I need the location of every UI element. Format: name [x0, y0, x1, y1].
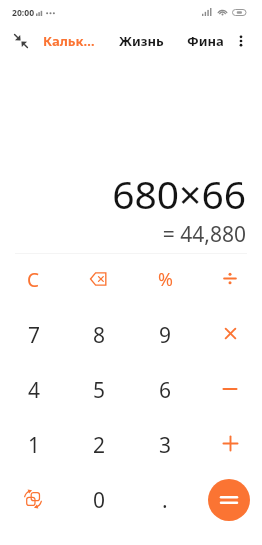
button[interactable]: Equals	[196, 471, 262, 526]
staticText: = 44,880	[162, 220, 246, 249]
button[interactable]: 6	[130, 361, 196, 416]
button[interactable]: 8	[65, 306, 130, 361]
button[interactable]: Финан	[187, 29, 224, 53]
button[interactable]: 1	[0, 416, 65, 471]
button[interactable]: 0	[65, 471, 130, 526]
button[interactable]: Converter	[0, 471, 65, 526]
staticText: 20:00	[12, 7, 35, 19]
staticText: 3	[159, 431, 172, 460]
staticText: 5	[93, 376, 106, 405]
staticText: Жизнь	[119, 32, 164, 50]
button[interactable]: Add	[196, 416, 262, 471]
staticText: Кальк…	[43, 32, 95, 50]
button[interactable]: Multiply	[196, 306, 262, 361]
staticText: Финан	[187, 32, 224, 50]
button[interactable]: 7	[0, 306, 65, 361]
staticText: 0	[93, 486, 106, 515]
staticText: %	[158, 267, 173, 292]
staticText: C	[27, 267, 40, 293]
button[interactable]: 4	[0, 361, 65, 416]
other: Multiply	[225, 328, 236, 339]
button[interactable]: Divide	[196, 251, 262, 306]
other: Collapse	[14, 34, 28, 48]
staticText: .	[162, 486, 168, 515]
button[interactable]: Backspace	[65, 251, 130, 306]
button[interactable]: 9	[130, 306, 196, 361]
staticText: 8	[93, 321, 106, 350]
button[interactable]: C	[0, 251, 65, 306]
staticText: 680×66	[112, 167, 246, 220]
staticText: 2	[93, 431, 106, 460]
button[interactable]: Subtract	[196, 361, 262, 416]
button[interactable]: More options	[229, 29, 253, 53]
button[interactable]: .	[130, 471, 196, 526]
other: Divide	[223, 272, 237, 285]
staticText: 4	[28, 376, 41, 405]
staticText: 1	[28, 431, 41, 460]
other: Add	[223, 436, 238, 451]
staticText: 9	[159, 321, 172, 350]
button[interactable]: Equals	[208, 479, 250, 521]
button[interactable]: Кальк…	[43, 29, 95, 53]
button[interactable]: %	[130, 251, 196, 306]
button[interactable]: 3	[130, 416, 196, 471]
button[interactable]: Collapse	[9, 29, 33, 53]
other: Subtract	[223, 382, 237, 396]
staticText: 6	[159, 376, 172, 405]
other: Backspace	[90, 272, 107, 286]
button[interactable]: 5	[65, 361, 130, 416]
button[interactable]: Жизнь	[119, 29, 164, 53]
staticText: 7	[28, 321, 41, 350]
button[interactable]: 2	[65, 416, 130, 471]
other: Converter	[24, 490, 42, 508]
